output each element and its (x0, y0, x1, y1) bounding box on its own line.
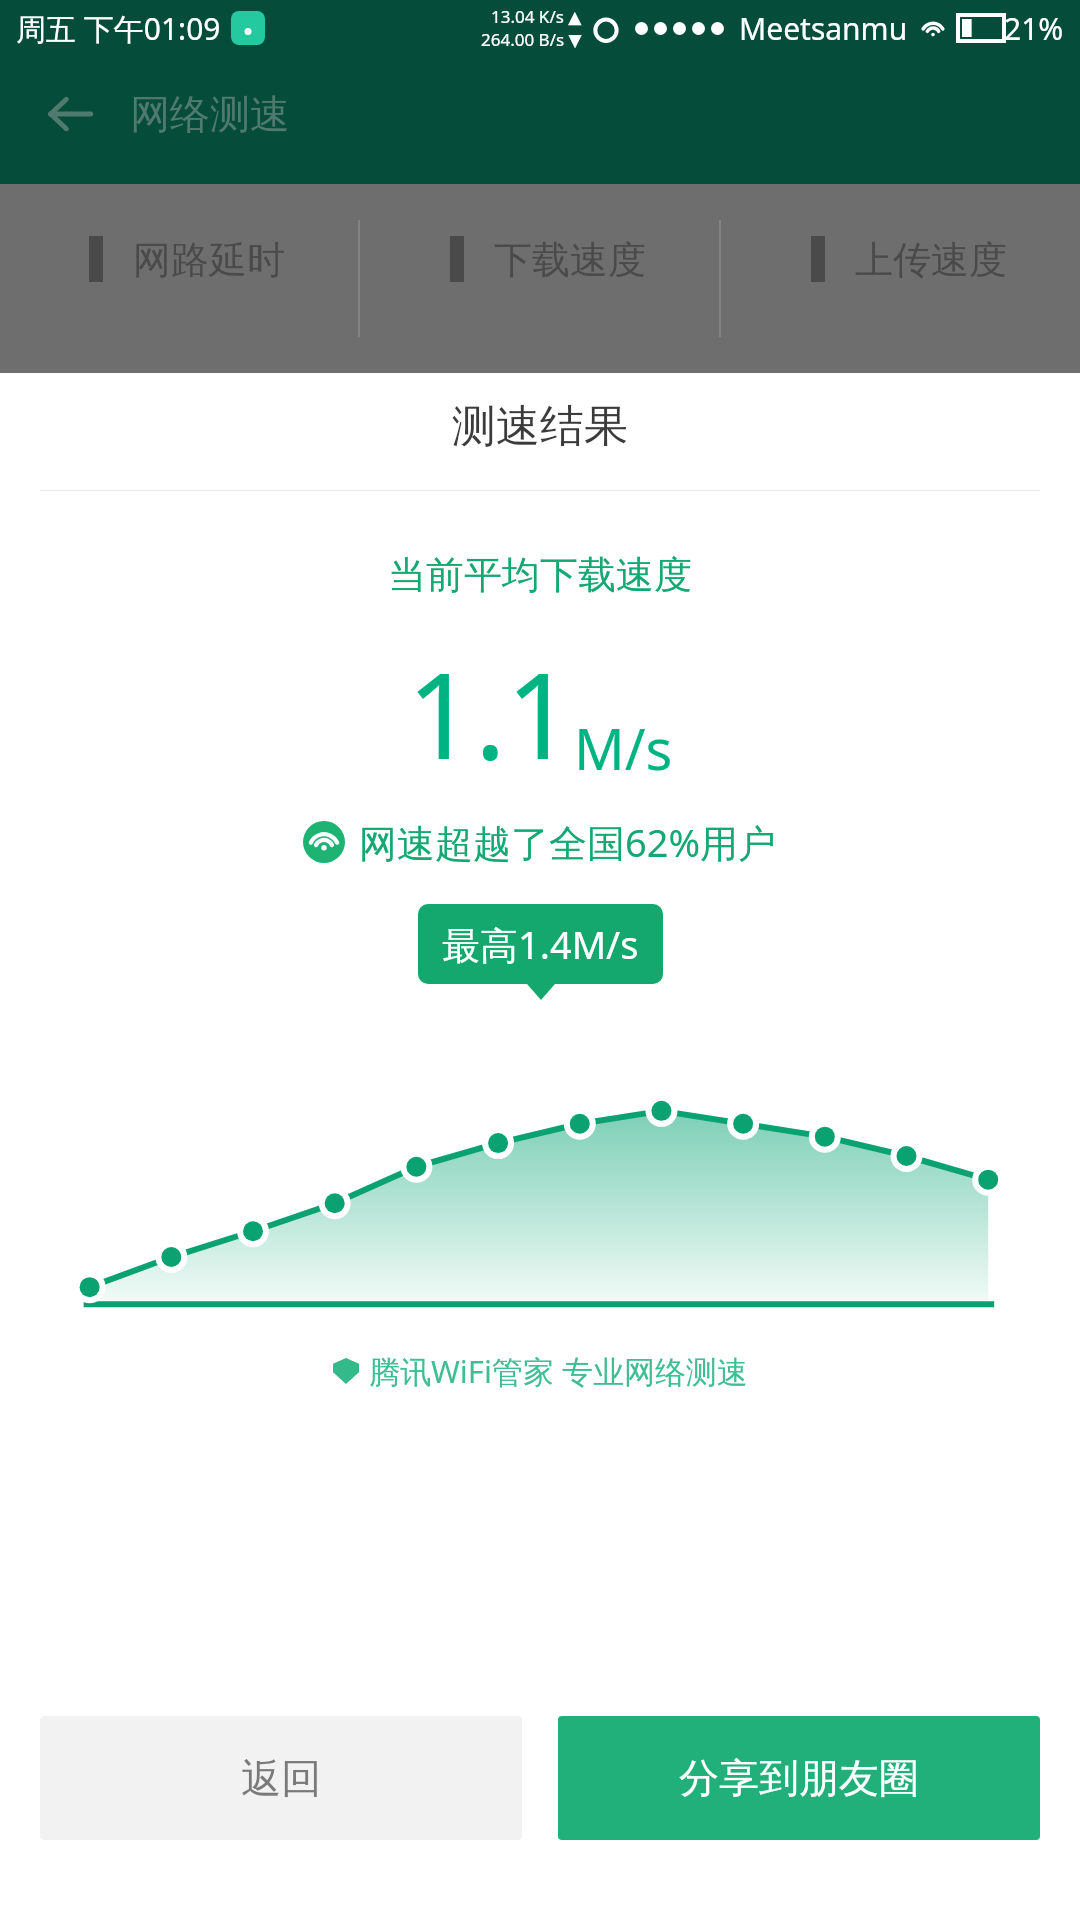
staticText: Meetsanmu (739, 8, 908, 49)
staticText: 上传速度 (855, 236, 1007, 284)
button[interactable]: Back (40, 84, 100, 144)
staticText: 测速结果 (0, 399, 1080, 454)
staticText: 返回 (241, 1753, 321, 1803)
staticText: 1.1 (407, 633, 574, 794)
staticText: 21% (1004, 8, 1064, 49)
staticText: M/s (574, 710, 673, 786)
button[interactable]: 返回 (40, 1716, 522, 1840)
staticText: 下载速度 (494, 236, 646, 284)
staticText: 当前平均下载速度 (0, 551, 1080, 599)
staticText: 网路延时 (133, 236, 285, 284)
staticText: 13.04 K/s ▲ (491, 5, 582, 28)
staticText: 腾讯WiFi管家 专业网络测速 (369, 1350, 748, 1392)
button[interactable]: 最高1.4M/s (442, 918, 639, 970)
staticText: 分享到朋友圈 (679, 1753, 919, 1803)
staticText: 最高1.4M/s (442, 918, 639, 970)
staticText: 网络测速 (130, 89, 290, 139)
staticText: 网速超越了全国62%用户 (359, 816, 777, 868)
staticText: 周五 下午01:09 (16, 8, 221, 49)
staticText: 264.00 B/s ▼ (481, 28, 582, 51)
button[interactable]: 分享到朋友圈 (558, 1716, 1040, 1840)
